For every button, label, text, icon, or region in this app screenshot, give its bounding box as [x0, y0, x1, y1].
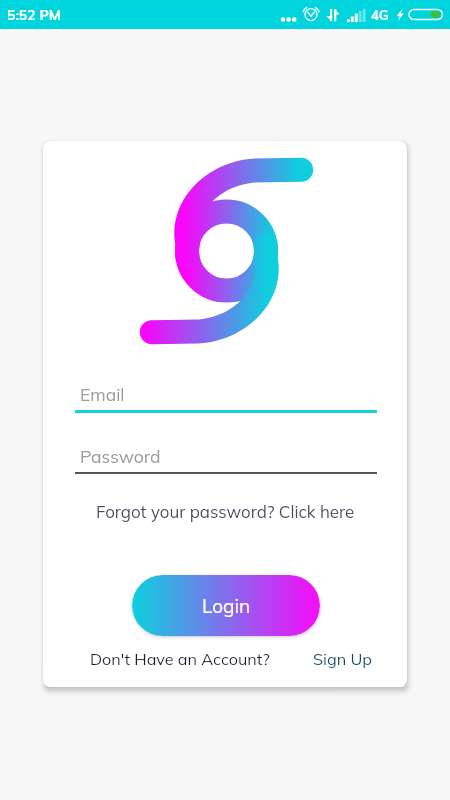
staticText: Password [80, 445, 161, 467]
button[interactable]: Forgot your password? Click here [43, 498, 407, 524]
staticText: Forgot your password? Click here [96, 501, 355, 522]
staticText: Email [80, 383, 125, 405]
other: App logo [140, 158, 312, 346]
button[interactable]: Login [132, 575, 320, 636]
button[interactable]: Sign Up [313, 649, 372, 669]
staticText: 4G [371, 7, 389, 23]
button[interactable]: Email [75, 379, 377, 415]
button[interactable]: Password [75, 441, 377, 477]
staticText: Sign Up [313, 649, 372, 669]
staticText: 5:52 PM [7, 6, 62, 24]
staticText: Login [202, 594, 251, 618]
staticText: Don't Have an Account? [90, 649, 270, 669]
